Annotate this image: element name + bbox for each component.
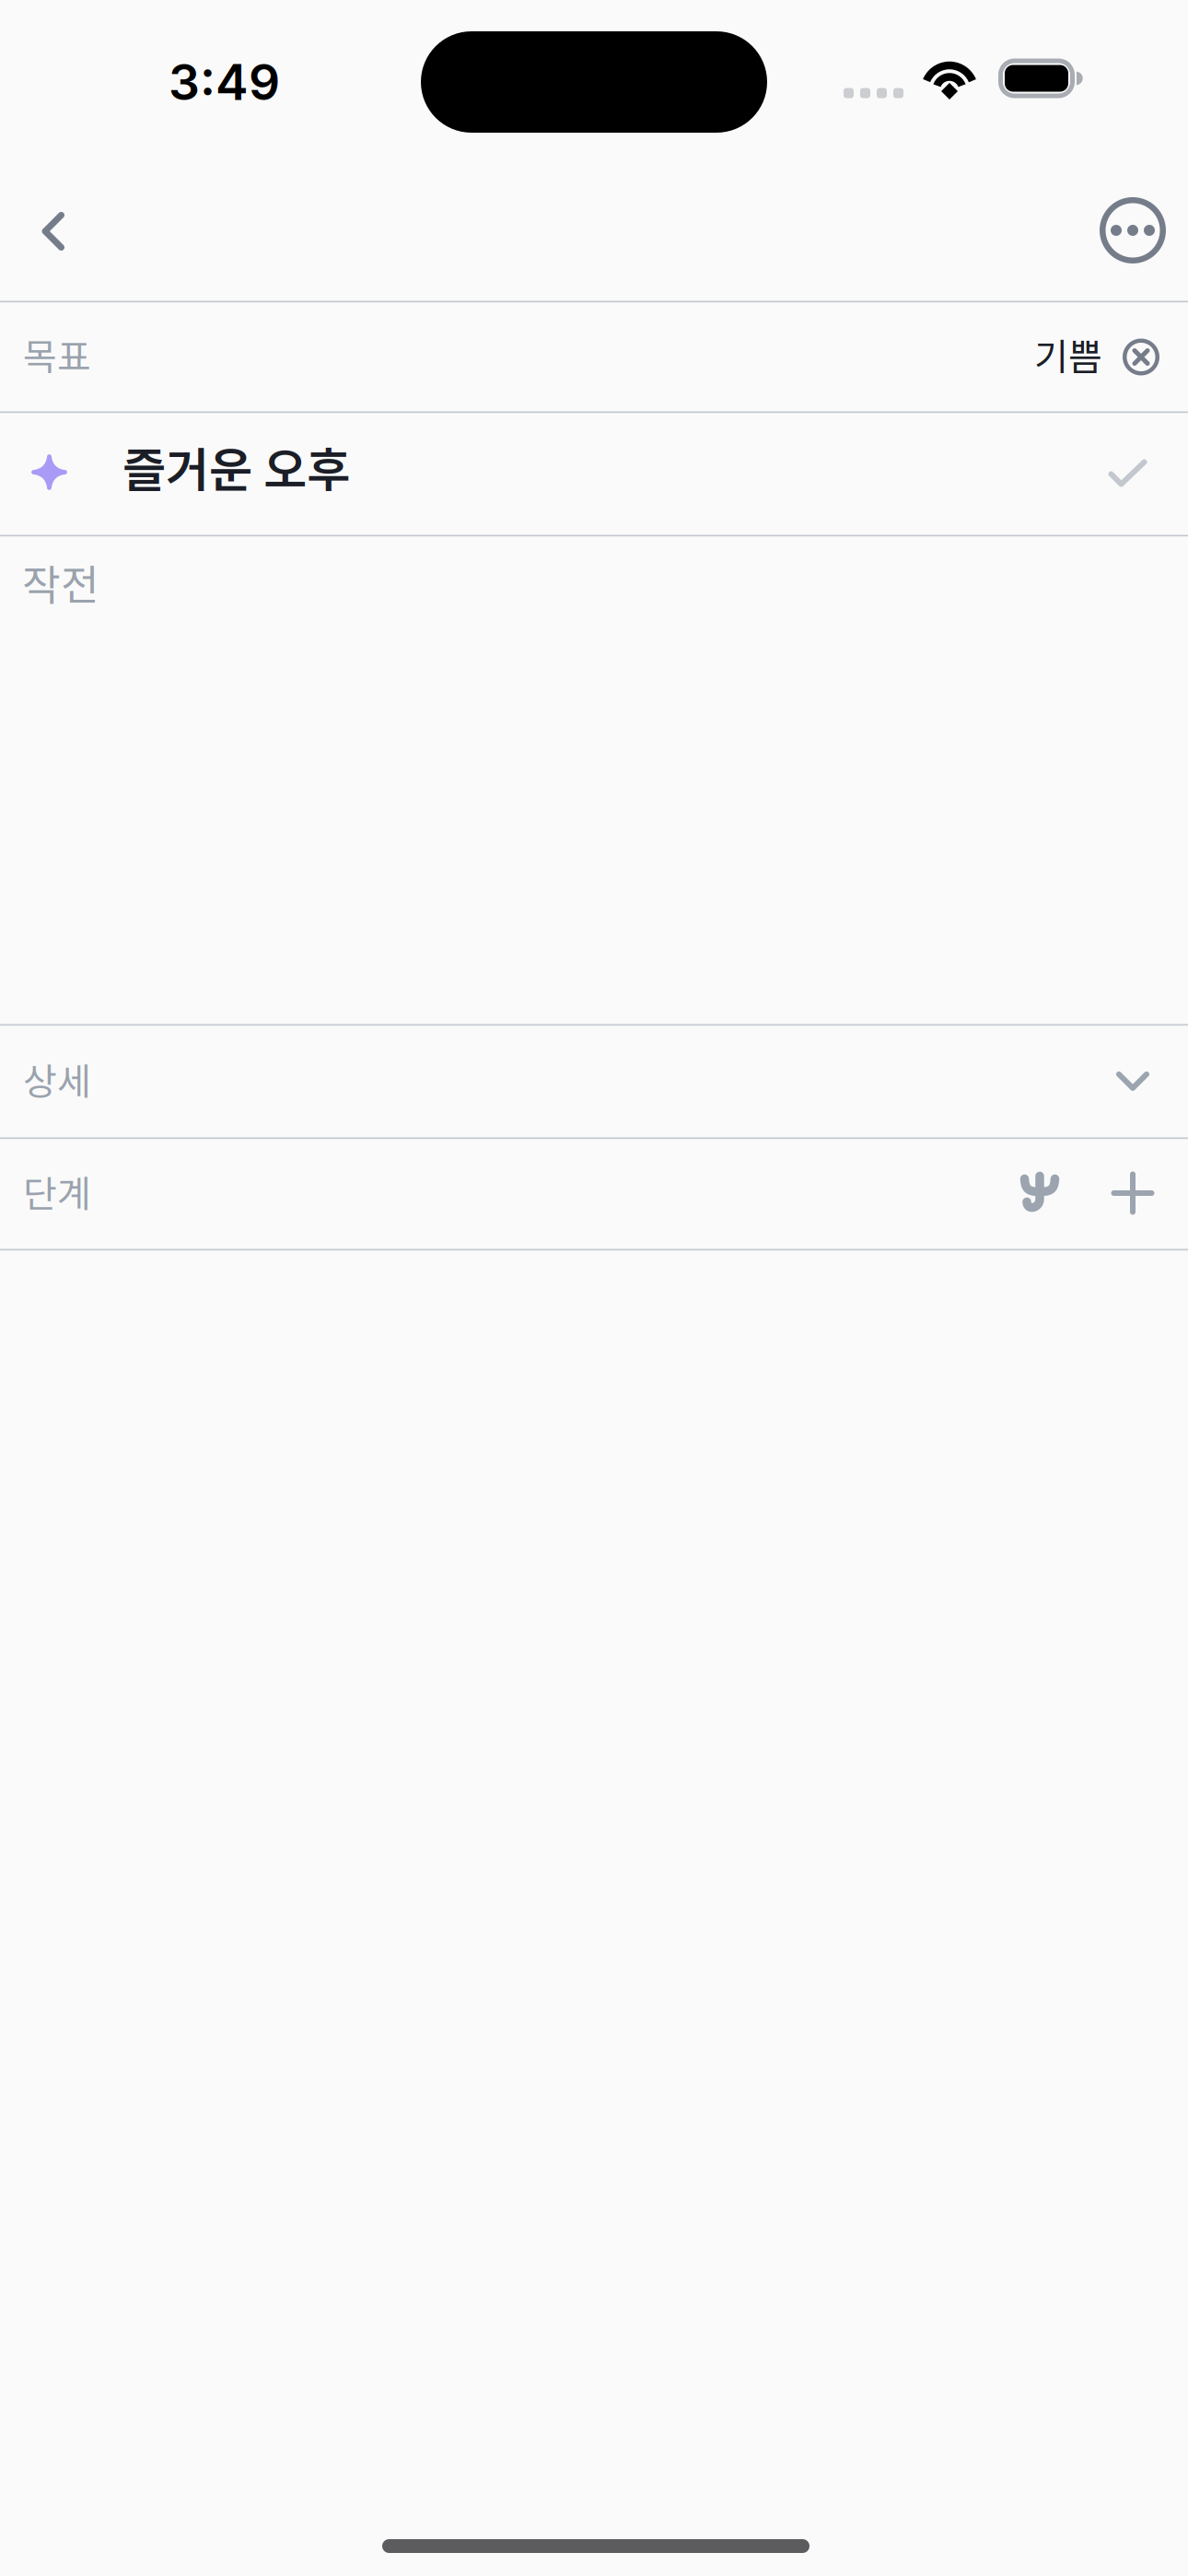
- staticText: 기쁨: [1034, 328, 1102, 381]
- staticText: 단계: [23, 1165, 91, 1218]
- button[interactable]: More options: [1077, 164, 1188, 300]
- button[interactable]: 상세: [0, 1026, 1188, 1137]
- button[interactable]: Clear goal: [1102, 303, 1180, 411]
- staticText: 3:49: [169, 52, 280, 112]
- staticText: 작전: [22, 552, 99, 612]
- staticText: 목표: [23, 328, 91, 381]
- button[interactable]: Accept suggestion: [1066, 414, 1188, 534]
- staticText: 즐거운 오후: [122, 432, 350, 501]
- button[interactable]: Link subtasks: [984, 1140, 1094, 1248]
- button[interactable]: Add step: [1094, 1140, 1171, 1248]
- staticText: 상세: [23, 1052, 91, 1105]
- button[interactable]: Back: [0, 164, 109, 300]
